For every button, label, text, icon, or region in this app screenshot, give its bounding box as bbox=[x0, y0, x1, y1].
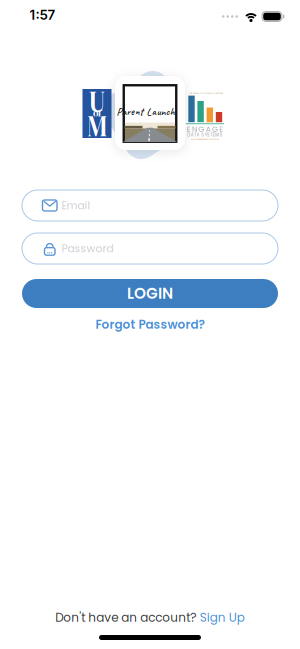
staticText: Email bbox=[61, 198, 90, 213]
staticText: Forgot Password? bbox=[95, 316, 204, 333]
button[interactable]: Password bbox=[22, 233, 278, 264]
staticText: Sign Up bbox=[200, 609, 245, 626]
staticText: LOGIN bbox=[127, 283, 173, 304]
staticText: ENGAGE bbox=[187, 124, 223, 134]
staticText: of bbox=[93, 106, 101, 120]
staticText: DATA SYSTEMS bbox=[187, 132, 223, 138]
staticText: www.engagedatasystems.com bbox=[191, 137, 219, 140]
staticText: Parent Launch bbox=[116, 105, 174, 118]
staticText: Don't have an account? bbox=[55, 609, 196, 626]
staticText: 1:57 bbox=[29, 7, 55, 23]
button[interactable]: Forgot Password? bbox=[95, 316, 204, 333]
staticText: M bbox=[85, 104, 109, 146]
button[interactable]: Email bbox=[22, 190, 278, 221]
staticText: Password bbox=[61, 241, 113, 256]
button[interactable]: LOGIN bbox=[22, 279, 278, 308]
staticText: The Power to Change Outcomes bbox=[189, 91, 223, 95]
staticText: U bbox=[87, 80, 107, 122]
button[interactable]: Sign Up bbox=[200, 609, 245, 626]
